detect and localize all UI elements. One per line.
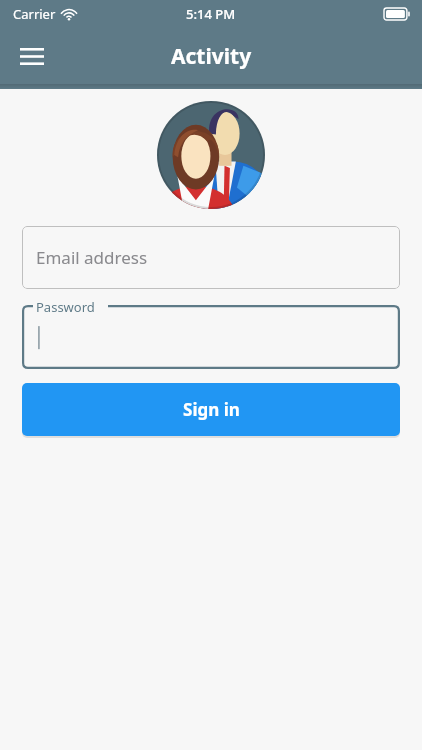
button[interactable]: Sign in <box>22 383 400 436</box>
button[interactable]: Password <box>22 305 400 369</box>
staticText: Password <box>36 298 95 316</box>
button[interactable]: Open navigation menu <box>12 36 52 76</box>
staticText: Email address <box>36 246 148 269</box>
staticText: Sign in <box>183 398 240 421</box>
staticText: 5:14 PM <box>186 5 236 23</box>
staticText: Carrier <box>13 5 56 23</box>
staticText: Activity <box>171 42 252 71</box>
button[interactable]: Email address <box>22 226 400 289</box>
